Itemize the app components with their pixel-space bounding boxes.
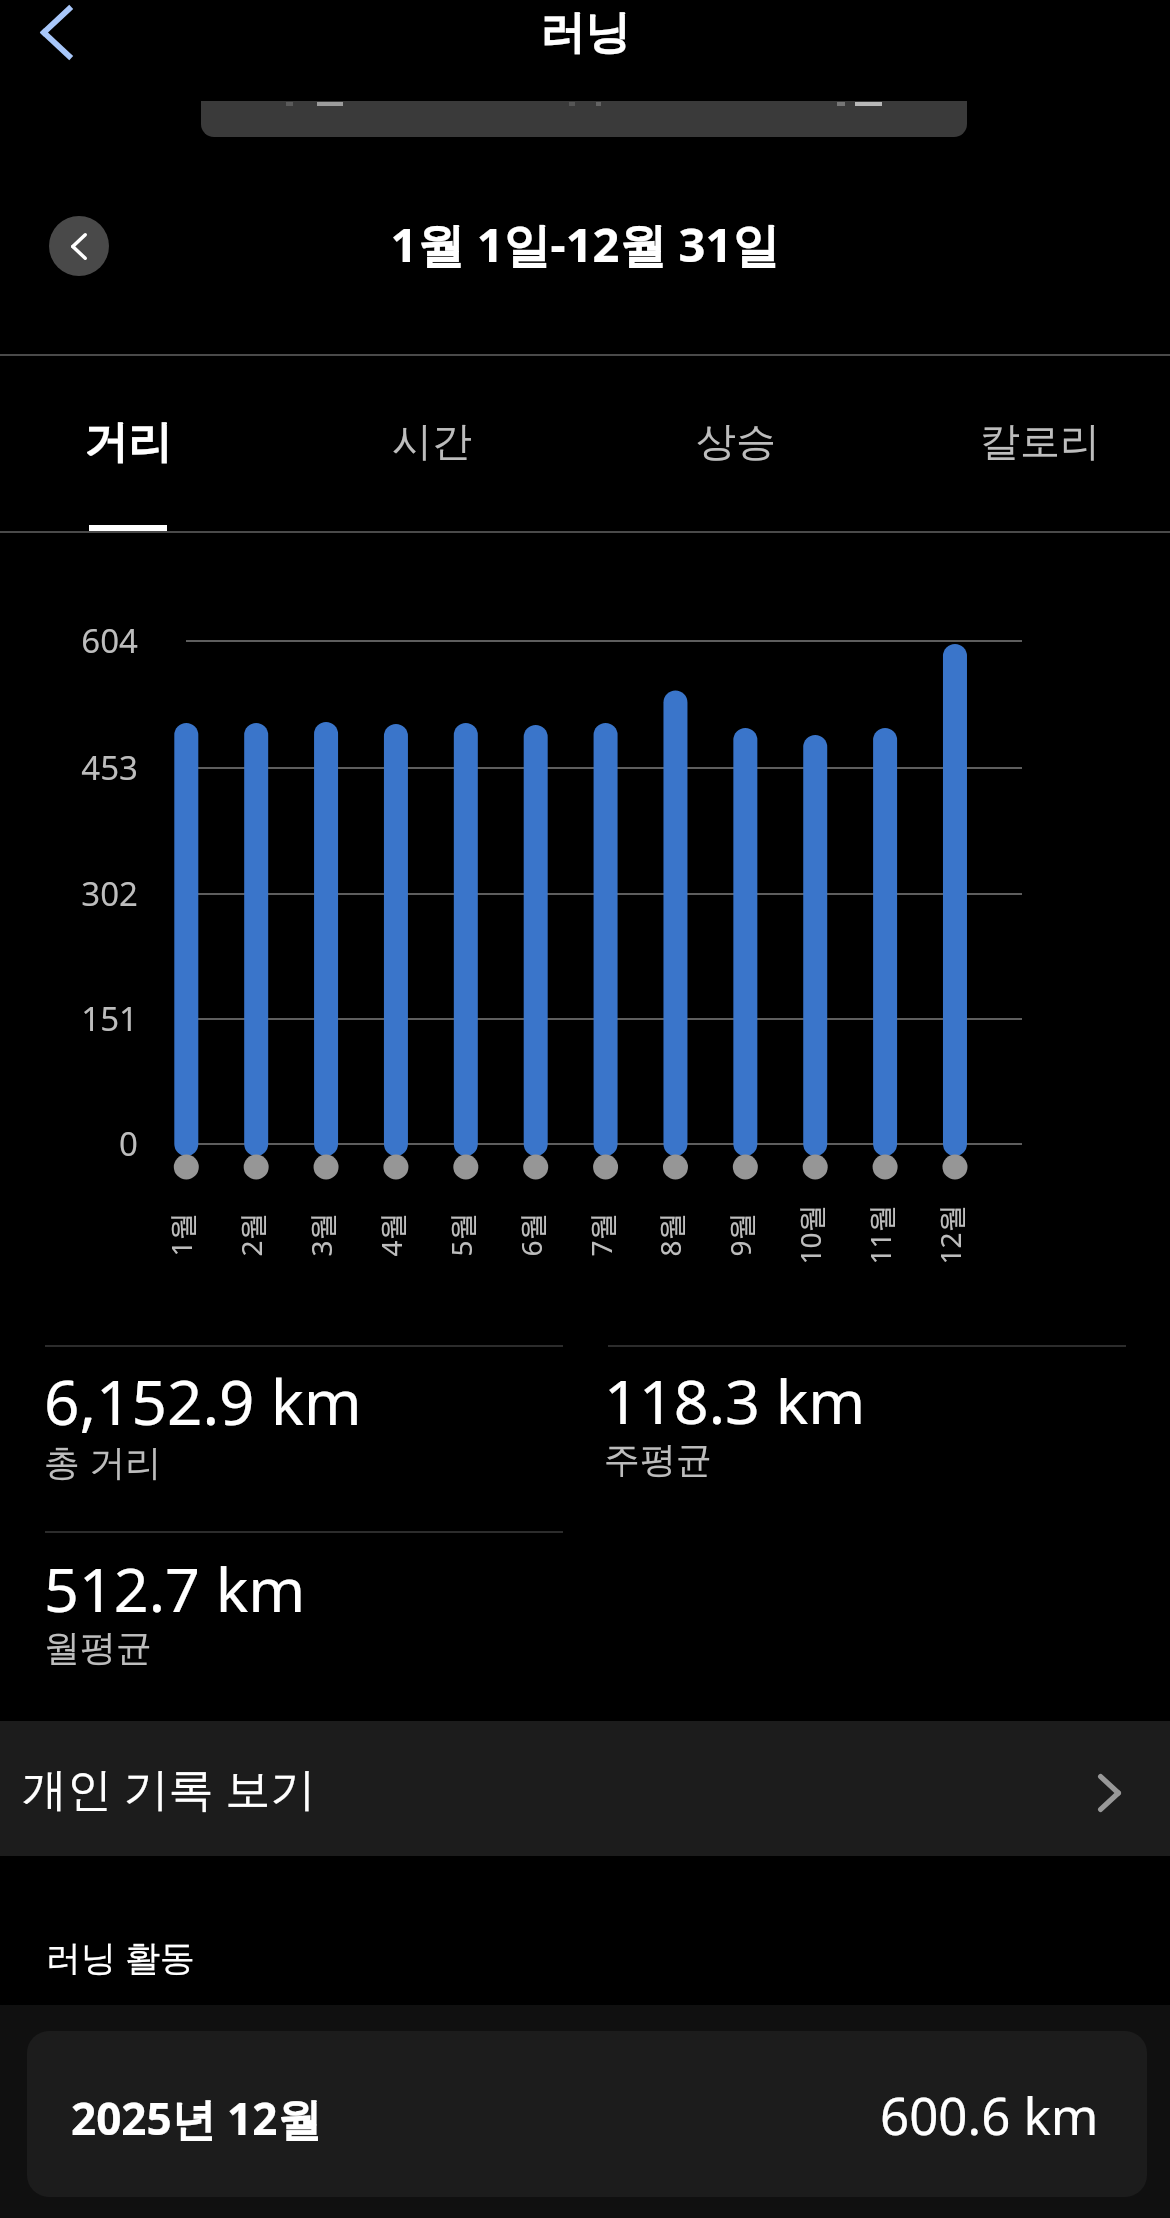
staticText: 4월 — [371, 1211, 409, 1256]
staticText: 러닝 활동 — [46, 1933, 196, 1981]
staticText: 7월 — [581, 1211, 619, 1256]
staticText: 러닝 — [0, 5, 1170, 62]
button[interactable]: 상승 — [584, 356, 888, 531]
button[interactable]: 칼로리 — [888, 356, 1170, 531]
button[interactable]: 거리 — [0, 356, 280, 531]
button[interactable]: Back — [8, 0, 104, 76]
staticText: 6월 — [511, 1211, 549, 1256]
staticText: 9월 — [720, 1211, 758, 1256]
staticText: 2월 — [231, 1211, 269, 1256]
staticText: 월평균 — [44, 1625, 152, 1670]
staticText: 151 — [0, 996, 138, 1041]
staticText: 453 — [0, 745, 138, 790]
staticText: 12월 — [930, 1203, 968, 1264]
staticText: 1월 — [161, 1211, 199, 1256]
staticText: 3월 — [301, 1211, 339, 1256]
staticText: 5월 — [441, 1211, 479, 1256]
staticText: 512.7 km — [44, 1547, 306, 1630]
staticText: 상승 — [584, 416, 888, 466]
staticText: 개인 기록 보기 — [22, 1757, 316, 1818]
staticText: 주평균 — [604, 1437, 712, 1482]
staticText: 시간 — [280, 416, 584, 466]
button[interactable] — [201, 54, 967, 137]
button[interactable]: 2025년 12월 — [27, 2031, 1147, 2197]
staticText: 2025년 12월 — [71, 2088, 322, 2148]
staticText: 0 — [0, 1121, 138, 1166]
staticText: 604 — [0, 618, 138, 663]
staticText: 6,152.9 km — [44, 1359, 362, 1443]
button[interactable]: 시간 — [280, 356, 584, 531]
staticText: 총 거리 — [44, 1437, 162, 1486]
staticText: 600.6 km — [880, 2080, 1099, 2149]
button[interactable]: Previous period — [49, 216, 109, 276]
staticText: 1월 1일-12월 31일 — [0, 212, 1170, 276]
staticText: 10월 — [790, 1203, 828, 1264]
staticText: 302 — [0, 871, 138, 916]
staticText: 거리 — [0, 415, 280, 470]
staticText: 8월 — [650, 1211, 688, 1256]
staticText: 118.3 km — [604, 1359, 866, 1442]
staticText: 11월 — [860, 1203, 898, 1264]
staticText: 칼로리 — [888, 416, 1170, 466]
button[interactable]: 개인 기록 보기 — [0, 1721, 1170, 1856]
